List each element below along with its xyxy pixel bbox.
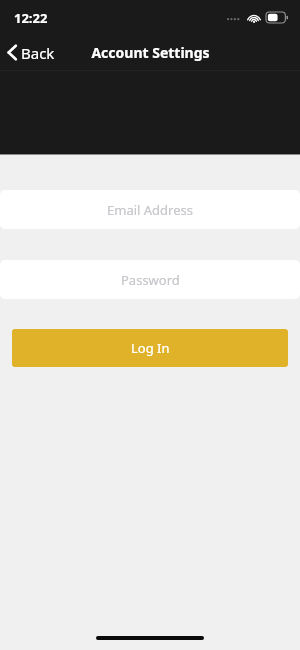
staticText: 12:22 <box>14 9 48 27</box>
staticText: Account Settings <box>91 43 210 62</box>
button[interactable]: Log In <box>12 329 288 367</box>
staticText: Email Address <box>107 201 193 219</box>
staticText: Log In <box>131 339 170 357</box>
button[interactable]: Back <box>0 35 63 70</box>
staticText: Password <box>121 271 180 289</box>
staticText: Back <box>21 43 55 63</box>
button[interactable]: Password <box>0 260 300 299</box>
button[interactable]: Email Address <box>0 190 300 229</box>
